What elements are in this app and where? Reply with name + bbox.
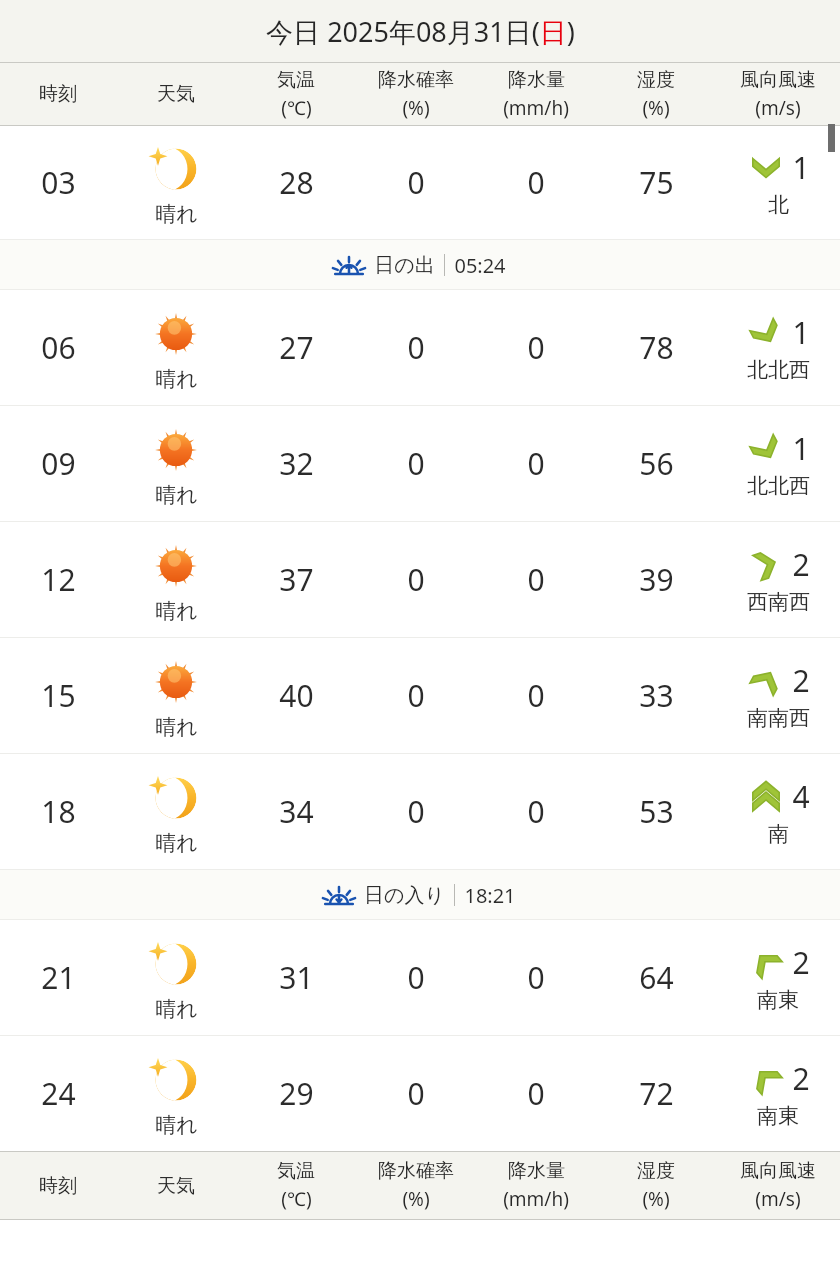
staticText: 27 <box>279 327 314 368</box>
staticText: 晴れ <box>155 996 198 1022</box>
staticText: 31 <box>279 957 314 998</box>
staticText: 0 <box>407 327 425 368</box>
staticText: 39 <box>639 559 674 600</box>
staticText: 0 <box>527 675 545 716</box>
button[interactable]: 24 <box>0 1036 840 1151</box>
other: 晴れ <box>145 651 207 713</box>
staticText: 4 <box>792 776 810 817</box>
other: 晴れ <box>145 535 207 597</box>
staticText: 北 <box>768 192 789 218</box>
other: 風向 南 <box>746 777 786 817</box>
staticText: 晴れ <box>155 598 198 624</box>
other: 風向 南東 <box>746 943 786 983</box>
staticText: 2 <box>792 942 810 983</box>
staticText: 降水量 <box>508 68 565 92</box>
staticText: 21 <box>41 957 76 998</box>
staticText: 南東 <box>757 1103 799 1129</box>
staticText: 29 <box>279 1073 314 1114</box>
staticText: 2 <box>792 1058 810 1099</box>
staticText: 湿度 <box>637 68 675 92</box>
staticText: (℃) <box>281 95 312 121</box>
staticText: 05:24 <box>454 252 506 279</box>
other: 風向 南南西 <box>746 661 786 701</box>
staticText: 晴れ <box>155 1112 198 1138</box>
staticText: 北北西 <box>747 473 810 499</box>
staticText: 湿度 <box>637 1159 675 1183</box>
staticText: 0 <box>407 162 425 203</box>
staticText: 18:21 <box>464 882 516 909</box>
staticText: 気温 <box>277 1159 315 1183</box>
staticText: 78 <box>639 327 674 368</box>
staticText: 72 <box>639 1073 674 1114</box>
staticText: 降水量 <box>508 1159 565 1183</box>
staticText: 降水確率 <box>378 68 454 92</box>
other: 晴れ <box>145 419 207 481</box>
staticText: (mm/h) <box>503 1186 569 1212</box>
staticText: 0 <box>407 957 425 998</box>
staticText: 1 <box>792 147 810 188</box>
staticText: 2 <box>792 544 810 585</box>
other: Sunset <box>324 880 354 910</box>
staticText: 晴れ <box>155 714 198 740</box>
other: 風向 北 <box>746 148 786 188</box>
other: 風向 西南西 <box>746 545 786 585</box>
staticText: 晴れ <box>155 830 198 856</box>
staticText: (mm/h) <box>503 95 569 121</box>
button[interactable]: 21 <box>0 920 840 1035</box>
button[interactable]: 06 <box>0 290 840 405</box>
staticText: 時刻 <box>39 1174 77 1198</box>
other: 晴れ <box>145 767 207 829</box>
staticText: 64 <box>639 957 674 998</box>
staticText: 0 <box>527 443 545 484</box>
staticText: 53 <box>639 791 674 832</box>
staticText: 0 <box>407 791 425 832</box>
button[interactable]: 03 <box>0 126 840 239</box>
other: 風向 北北西 <box>746 429 786 469</box>
staticText: 15 <box>41 675 76 716</box>
other: Sunrise <box>334 250 364 280</box>
staticText: 2 <box>792 660 810 701</box>
other: 風向 南東 <box>746 1059 786 1099</box>
button[interactable]: 今日 2025年08月31日(日) <box>0 0 840 62</box>
staticText: 日の出 <box>374 253 435 278</box>
staticText: 03 <box>41 162 76 203</box>
staticText: 今日 2025年08月31日(日) <box>266 13 575 50</box>
staticText: 0 <box>527 1073 545 1114</box>
staticText: 56 <box>639 443 674 484</box>
staticText: (m/s) <box>755 1186 801 1212</box>
other: 晴れ <box>145 138 207 200</box>
staticText: 風向風速 <box>740 1159 816 1183</box>
staticText: 0 <box>527 559 545 600</box>
staticText: (%) <box>642 1186 670 1212</box>
staticText: 日の入り <box>364 883 445 908</box>
staticText: 天気 <box>157 1174 195 1198</box>
button[interactable]: 15 <box>0 638 840 753</box>
staticText: 時刻 <box>39 82 77 106</box>
staticText: 33 <box>639 675 674 716</box>
staticText: 南南西 <box>747 705 810 731</box>
staticText: (%) <box>402 1186 430 1212</box>
other: 晴れ <box>145 1049 207 1111</box>
staticText: 0 <box>407 675 425 716</box>
staticText: 南 <box>768 821 789 847</box>
staticText: (%) <box>402 95 430 121</box>
staticText: 晴れ <box>155 366 198 392</box>
staticText: 32 <box>279 443 314 484</box>
staticText: 晴れ <box>155 201 198 227</box>
staticText: 34 <box>279 791 314 832</box>
staticText: (m/s) <box>755 95 801 121</box>
staticText: 0 <box>527 327 545 368</box>
staticText: (%) <box>642 95 670 121</box>
staticText: 28 <box>279 162 314 203</box>
button[interactable]: 18 <box>0 754 840 869</box>
button[interactable]: 12 <box>0 522 840 637</box>
staticText: (℃) <box>281 1186 312 1212</box>
staticText: 0 <box>407 559 425 600</box>
staticText: 晴れ <box>155 482 198 508</box>
staticText: 西南西 <box>747 589 810 615</box>
button[interactable]: 09 <box>0 406 840 521</box>
other: 晴れ <box>145 303 207 365</box>
staticText: 南東 <box>757 987 799 1013</box>
staticText: 18 <box>41 791 76 832</box>
staticText: 0 <box>527 162 545 203</box>
